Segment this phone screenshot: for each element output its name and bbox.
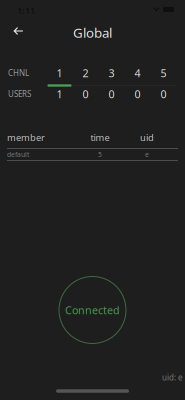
staticText: Global — [73, 24, 112, 41]
staticText: member — [7, 131, 45, 144]
staticText: 5 — [98, 150, 102, 159]
button[interactable]: 4 — [124, 64, 150, 81]
staticText: time — [90, 131, 109, 144]
staticText: Connected — [65, 303, 120, 317]
staticText: 0 — [160, 87, 166, 101]
staticText: 2 — [82, 66, 88, 80]
staticText: 0 — [108, 87, 114, 101]
staticText: 1:11 — [17, 4, 35, 17]
staticText: 0 — [82, 87, 88, 101]
button[interactable]: 0 — [150, 85, 176, 102]
button[interactable]: Back — [5, 18, 31, 44]
staticText: 0 — [134, 87, 140, 101]
staticText: 5 — [160, 66, 166, 80]
button[interactable]: 2 — [72, 64, 98, 81]
button[interactable]: 5 — [150, 64, 176, 81]
button[interactable]: 3 — [98, 64, 124, 81]
button[interactable]: Connected — [59, 276, 126, 343]
staticText: e — [145, 150, 149, 159]
staticText: uid: e — [162, 372, 183, 383]
button[interactable]: 0 — [98, 85, 124, 102]
button[interactable]: 1 — [46, 64, 72, 81]
staticText: USERS — [8, 89, 31, 99]
staticText: 4 — [134, 66, 140, 80]
staticText: 1 — [56, 66, 62, 80]
button[interactable]: 0 — [72, 85, 98, 102]
staticText: 1 — [56, 87, 62, 101]
staticText: 3 — [108, 66, 114, 80]
staticText: uid — [140, 131, 154, 144]
button[interactable]: 1 — [46, 85, 72, 102]
button[interactable]: 0 — [124, 85, 150, 102]
staticText: default — [7, 150, 29, 159]
staticText: CHNL — [8, 68, 29, 78]
